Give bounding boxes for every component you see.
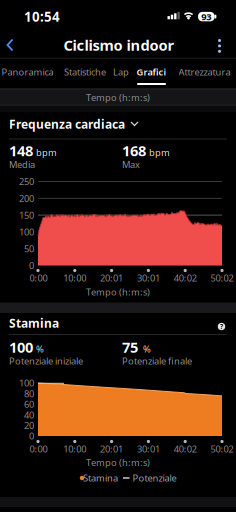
staticText: 200	[19, 192, 34, 204]
staticText: Stamina	[9, 315, 59, 331]
staticText: 80	[24, 387, 34, 400]
staticText: 60	[24, 398, 34, 410]
staticText: 30:01	[137, 443, 160, 455]
staticText: Lap	[113, 66, 129, 78]
staticText: 50:02	[210, 272, 233, 284]
button[interactable]: Grafici	[136, 62, 166, 82]
staticText: %	[36, 343, 44, 355]
staticText: Statistiche	[64, 66, 106, 78]
button[interactable]: About Stamina	[216, 321, 226, 331]
staticText: Tempo (h:m:s)	[86, 286, 150, 298]
staticText: 0	[29, 259, 34, 272]
button[interactable]: Attrezzatura	[178, 62, 230, 82]
staticText: Tempo (h:m:s)	[86, 456, 150, 469]
staticText: Ciclismo indoor	[63, 35, 174, 55]
staticText: Frequenza cardiaca	[9, 116, 125, 132]
button[interactable]: More options	[212, 37, 226, 54]
staticText: ?	[220, 322, 223, 331]
staticText: Potenziale	[132, 472, 176, 484]
staticText: 0:00	[29, 443, 47, 455]
button[interactable]: Statistiche	[64, 62, 106, 82]
staticText: 10:54	[24, 8, 60, 25]
staticText: 100	[19, 377, 34, 389]
staticText: bpm	[36, 146, 57, 159]
button[interactable]: Lap	[113, 62, 129, 82]
staticText: 250	[19, 175, 34, 188]
staticText: 150	[19, 209, 34, 221]
staticText: 50	[24, 242, 34, 255]
staticText: Panoramica	[1, 66, 53, 78]
staticText: Max	[122, 158, 140, 171]
button[interactable]: Frequenza cardiaca	[9, 116, 159, 132]
staticText: 168	[122, 141, 146, 160]
staticText: 40:02	[174, 272, 197, 284]
staticText: Attrezzatura	[178, 66, 230, 78]
staticText: 10:00	[63, 443, 86, 455]
staticText: Potenziale finale	[122, 355, 192, 367]
staticText: 20:01	[100, 272, 123, 284]
button[interactable]: Stamina	[9, 315, 109, 331]
staticText: 0	[29, 430, 34, 442]
staticText: 20	[24, 419, 34, 432]
staticText: Grafici	[136, 66, 166, 78]
staticText: 93	[201, 10, 211, 23]
staticText: 50:02	[210, 443, 233, 455]
staticText: 0:00	[29, 272, 47, 284]
staticText: Stamina	[83, 472, 118, 484]
staticText: bpm	[149, 146, 170, 159]
staticText: 148	[9, 141, 33, 160]
staticText: 20:01	[100, 443, 123, 455]
button[interactable]: Back	[0, 36, 20, 54]
staticText: 40:02	[174, 443, 197, 455]
staticText: 30:01	[137, 272, 160, 284]
staticText: 75	[122, 337, 138, 357]
staticText: Potenziale iniziale	[9, 355, 83, 367]
staticText: 10:00	[63, 272, 86, 284]
staticText: 40	[24, 409, 34, 421]
staticText: Tempo (h:m:s)	[86, 91, 150, 103]
staticText: Media	[9, 158, 35, 171]
staticText: 100	[19, 226, 34, 238]
button[interactable]: Panoramica	[1, 62, 53, 82]
staticText: %	[143, 343, 151, 355]
staticText: 100	[9, 337, 33, 357]
